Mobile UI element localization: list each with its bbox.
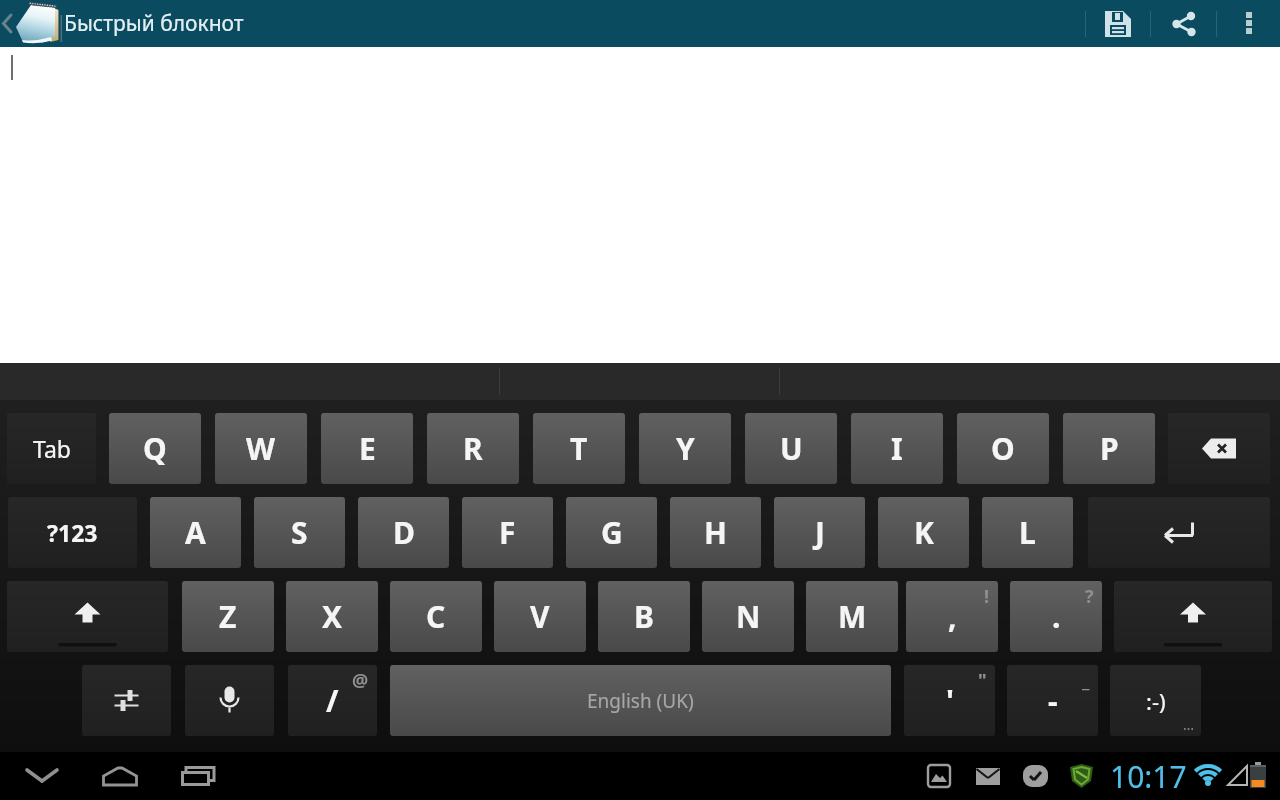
staticText: A [185,512,206,553]
button[interactable]: F [462,497,553,568]
staticText: I [891,428,903,469]
button[interactable]: Y [639,413,731,484]
staticText: @ [352,668,369,693]
button[interactable]: J [774,497,865,568]
staticText: C [426,596,446,637]
staticText: ' [946,680,954,721]
staticText: N [736,596,761,637]
button[interactable]: B [598,581,690,652]
staticText: E [359,428,376,469]
button[interactable]: I [851,413,943,484]
staticText: :-) [1146,686,1166,716]
staticText: W [246,428,276,469]
staticText: L [1019,512,1036,553]
button[interactable] [1217,0,1280,47]
button[interactable] [1151,0,1216,47]
button[interactable]: X [286,581,378,652]
button[interactable]: Q [109,413,201,484]
staticText: M [838,596,867,637]
button[interactable]: U [745,413,837,484]
button[interactable]: V [494,581,586,652]
staticText: / [326,680,339,721]
staticText: , [948,596,957,637]
button[interactable] [1086,0,1150,47]
staticText: English (UK) [587,688,694,714]
staticText: U [780,428,803,469]
staticText: " [978,668,987,693]
button[interactable]: E [321,413,413,484]
button[interactable]: / [288,665,377,736]
staticText: T [570,428,588,469]
button[interactable]: W [215,413,307,484]
button[interactable] [92,752,148,800]
staticText: O [991,428,1015,469]
button[interactable] [170,752,226,800]
button[interactable]: K [878,497,969,568]
staticText: J [815,512,825,553]
button[interactable] [82,665,171,736]
button[interactable]: English (UK) [390,665,891,736]
staticText: B [634,596,654,637]
button[interactable]: L [982,497,1073,568]
staticText: ? [1085,584,1094,609]
staticText: S [291,512,308,553]
button[interactable]: M [806,581,898,652]
staticText: . [1052,596,1061,637]
button[interactable]: D [358,497,449,568]
button[interactable]: Tab [7,413,96,484]
staticText: G [601,512,623,553]
button[interactable]: G [566,497,657,568]
staticText: ?123 [47,517,98,548]
button[interactable]: , [906,581,998,652]
button[interactable]: . [1010,581,1102,652]
staticText: Tab [33,433,71,464]
button[interactable]: ' [904,665,995,736]
button[interactable]: O [957,413,1049,484]
button[interactable]: Z [182,581,274,652]
button[interactable] [1114,581,1272,652]
button[interactable] [1088,497,1270,568]
staticText: K [914,512,934,553]
staticText: 10:17 [1110,756,1187,797]
button[interactable]: P [1063,413,1155,484]
staticText: X [322,596,343,637]
staticText: P [1100,428,1119,469]
button[interactable]: A [150,497,241,568]
staticText: V [530,596,550,637]
staticText: Быстрый блокнот [64,9,244,38]
staticText: - [1048,680,1058,721]
button[interactable] [7,581,168,652]
staticText: H [704,512,727,553]
staticText: _ [1082,668,1090,693]
button[interactable] [185,665,274,736]
button[interactable]: H [670,497,761,568]
button[interactable] [14,752,70,800]
button[interactable]: :-) [1110,665,1201,736]
staticText: Z [219,596,237,637]
staticText: F [499,512,516,553]
button[interactable]: Быстрый блокнот [14,0,244,47]
button[interactable]: N [702,581,794,652]
button[interactable]: S [254,497,345,568]
staticText: … [1183,715,1195,734]
staticText: Q [143,428,167,469]
button[interactable]: R [427,413,519,484]
button[interactable]: ?123 [8,497,137,568]
button[interactable]: C [390,581,482,652]
staticText: R [463,428,483,469]
button[interactable]: - [1007,665,1098,736]
button[interactable] [1168,413,1270,484]
staticText: D [393,512,415,553]
button[interactable] [0,0,14,47]
button[interactable]: T [533,413,625,484]
staticText: ! [984,584,990,609]
staticText: Y [676,428,695,469]
